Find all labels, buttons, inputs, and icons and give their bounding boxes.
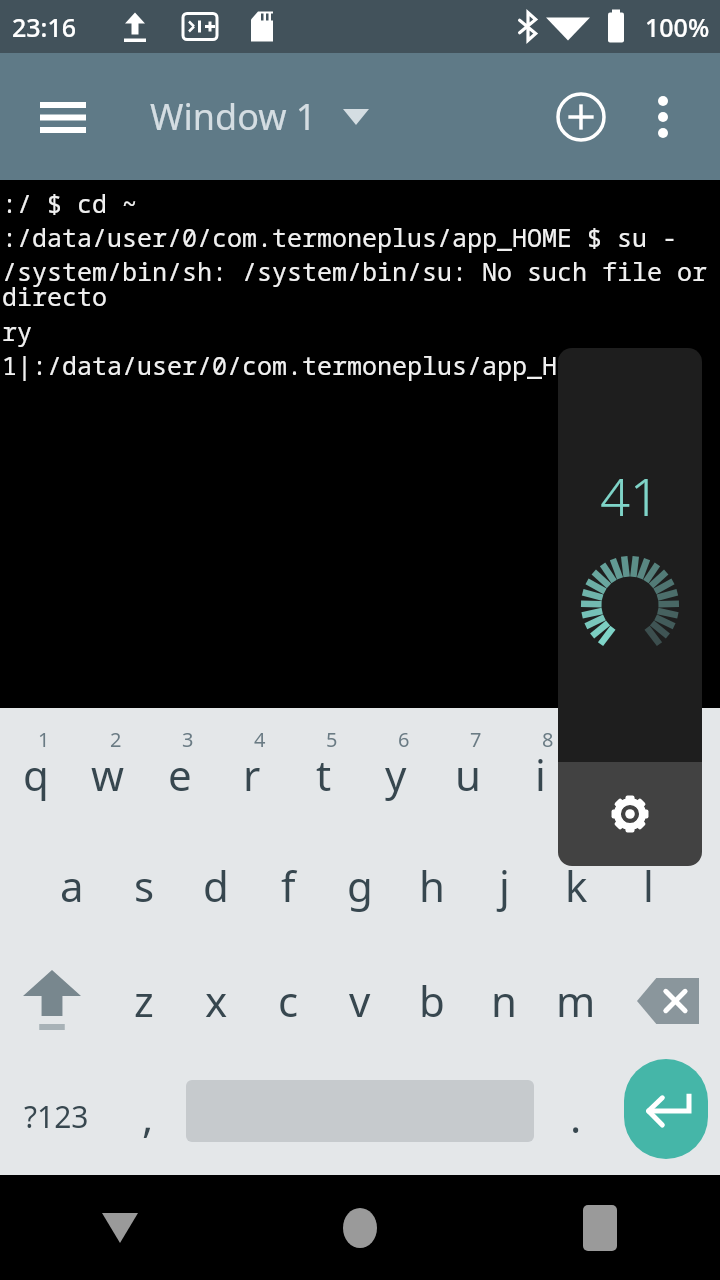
staticText: 6 (398, 726, 410, 753)
staticText: 1|:/data/user/0/com.termoneplus/app_HOME… (2, 348, 648, 382)
staticText: o (599, 746, 625, 803)
staticText: Window 1 (150, 92, 317, 141)
staticText: c (278, 972, 299, 1029)
button[interactable]: 3 (144, 708, 216, 828)
button[interactable]: Home (240, 1175, 480, 1280)
button[interactable]: 2 (72, 708, 144, 828)
staticText: l (643, 857, 654, 914)
button[interactable]: d (180, 828, 252, 943)
staticText: m (556, 972, 596, 1029)
button[interactable]: j (468, 828, 540, 943)
staticText: j (499, 857, 510, 914)
button[interactable]: More options (626, 80, 700, 154)
staticText: 100% (645, 10, 710, 44)
button[interactable]: z (108, 943, 180, 1058)
button[interactable]: s (108, 828, 180, 943)
button[interactable]: v (324, 943, 396, 1058)
button[interactable]: ?123 (0, 1058, 112, 1175)
button[interactable]: 1 (0, 708, 72, 828)
staticText: i (535, 746, 546, 803)
button[interactable]: a (36, 828, 108, 943)
staticText: f (281, 857, 296, 914)
staticText: :/ $ cd ~ (2, 186, 138, 220)
staticText: w (91, 746, 125, 803)
button[interactable]: Recent apps (480, 1175, 720, 1280)
button[interactable]: c (252, 943, 324, 1058)
button[interactable]: b (396, 943, 468, 1058)
staticText: h (419, 857, 445, 914)
staticText: v (349, 972, 371, 1029)
staticText: a (60, 857, 84, 914)
staticText: z (134, 972, 154, 1029)
button[interactable]: 8 (504, 708, 576, 828)
button[interactable]: n (468, 943, 540, 1058)
staticText: 41 (600, 460, 660, 531)
staticText: r (243, 746, 261, 803)
staticText: 23:16 (12, 10, 77, 44)
staticText: 4 (254, 726, 266, 753)
staticText: t (316, 746, 332, 803)
staticText: d (203, 857, 229, 914)
button[interactable]: , (112, 1058, 184, 1175)
button[interactable]: 4 (216, 708, 288, 828)
button[interactable]: New window (542, 78, 620, 156)
button[interactable]: Shift (0, 943, 104, 1058)
staticText: ry (2, 314, 33, 348)
staticText: 7 (470, 726, 482, 753)
staticText: n (491, 972, 517, 1029)
button[interactable]: g (324, 828, 396, 943)
staticText: u (455, 746, 481, 803)
button[interactable]: 0 (648, 708, 720, 828)
staticText: b (419, 972, 445, 1029)
staticText: 1 (38, 726, 50, 753)
staticText: 3 (182, 726, 194, 753)
button[interactable]: f (252, 828, 324, 943)
button[interactable]: Enter (624, 1059, 708, 1159)
staticText: k (565, 857, 588, 914)
button[interactable]: Back (0, 1175, 240, 1280)
staticText: 2 (110, 726, 122, 753)
staticText: y (385, 746, 407, 803)
button[interactable]: 7 (432, 708, 504, 828)
button[interactable]: m (540, 943, 612, 1058)
button[interactable]: 6 (360, 708, 432, 828)
button[interactable]: Window 1 (150, 92, 369, 141)
button[interactable]: Settings (558, 762, 702, 866)
button[interactable]: 9 (576, 708, 648, 828)
button[interactable]: 5 (288, 708, 360, 828)
staticText: /system/bin/sh: /system/bin/su: No such … (2, 254, 720, 314)
staticText: q (23, 746, 49, 803)
staticText: ?123 (24, 1096, 89, 1137)
staticText: :/data/user/0/com.termoneplus/app_HOME $… (2, 220, 678, 254)
button[interactable]: x (180, 943, 252, 1058)
button[interactable]: l (612, 828, 684, 943)
staticText: g (347, 857, 373, 914)
button[interactable]: . (540, 1058, 612, 1175)
button[interactable]: h (396, 828, 468, 943)
staticText: s (134, 857, 155, 914)
staticText: , (142, 1088, 154, 1145)
staticText: e (168, 746, 192, 803)
button[interactable]: k (540, 828, 612, 943)
button[interactable]: Backspace (616, 943, 720, 1058)
staticText: 8 (542, 726, 554, 753)
staticText: . (570, 1088, 582, 1145)
staticText: p (671, 746, 697, 803)
button[interactable]: Open menu (20, 74, 106, 160)
staticText: 5 (326, 726, 338, 753)
staticText: x (205, 972, 228, 1029)
